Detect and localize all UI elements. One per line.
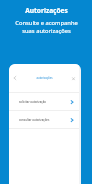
staticText: Consulte e acompanhe suas autorizações	[15, 19, 78, 35]
button[interactable]: solicitar autorização	[9, 93, 79, 110]
button[interactable]: Fechar	[67, 72, 79, 84]
staticText: solicitar autorização	[19, 100, 46, 104]
staticText: autorizações	[36, 76, 53, 80]
button[interactable]: consultar autorizações	[9, 111, 79, 128]
button[interactable]: autorizações	[33, 74, 56, 82]
staticText: Autorizações	[25, 6, 68, 15]
staticText: consultar autorizações	[19, 118, 50, 122]
button[interactable]: Voltar	[9, 72, 21, 84]
